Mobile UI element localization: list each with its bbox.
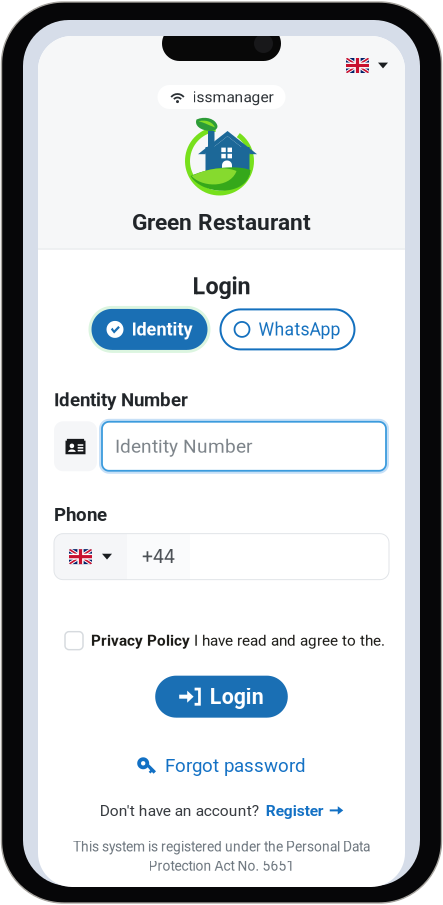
button[interactable]: Register <box>266 801 343 820</box>
staticText: Identity <box>131 319 192 340</box>
staticText: Don't have an account? <box>100 801 259 820</box>
staticText: Register <box>266 801 324 820</box>
staticText: Phone <box>54 504 107 526</box>
staticText: This system is registered under the Pers… <box>73 839 370 855</box>
staticText: Identity Number <box>115 435 252 457</box>
button[interactable]: Login <box>155 676 288 718</box>
staticText: +44 <box>142 545 175 568</box>
staticText: Login <box>210 684 264 709</box>
button[interactable]: Identity <box>88 306 210 353</box>
button[interactable]: WhatsApp <box>220 309 354 349</box>
button[interactable]: Select language <box>338 53 396 78</box>
staticText: Protection Act No. 5651 <box>148 858 294 874</box>
staticText: Green Restaurant <box>132 209 311 236</box>
staticText: WhatsApp <box>258 319 340 340</box>
staticText: Privacy Policy I have read and agree to … <box>91 632 385 649</box>
staticText: Identity Number <box>54 389 188 411</box>
staticText: Login <box>192 273 250 300</box>
button[interactable]: Privacy Policy I have read and agree to … <box>38 580 405 650</box>
staticText: issmanager <box>192 88 273 106</box>
button[interactable]: Forgot password <box>137 718 306 777</box>
staticText: Forgot password <box>165 755 306 777</box>
